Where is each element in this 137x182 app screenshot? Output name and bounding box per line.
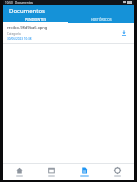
staticText: HISTÓRICOS — [91, 17, 112, 22]
staticText: Documentos — [9, 7, 45, 15]
staticText: Documentos — [15, 1, 33, 5]
button[interactable]: PENDIENTES — [3, 16, 68, 23]
button[interactable]: Ajustes — [101, 164, 134, 180]
button[interactable]: HISTÓRICOS — [68, 16, 134, 23]
button[interactable]: Inicio — [3, 164, 35, 180]
staticText: Categoría — [7, 32, 21, 36]
button[interactable]: recibo-98d9ba6.xpng — [3, 23, 134, 43]
staticText: PENDIENTES — [25, 17, 47, 22]
button[interactable]: Pedidos — [35, 164, 68, 180]
staticText: 30/06/2023 10:38 — [7, 37, 32, 41]
button[interactable]: Documentos — [68, 164, 101, 180]
button[interactable]: Descargar — [118, 27, 130, 39]
staticText: recibo-98d9ba6.xpng — [7, 25, 48, 30]
staticText: 10:50 — [5, 1, 13, 5]
